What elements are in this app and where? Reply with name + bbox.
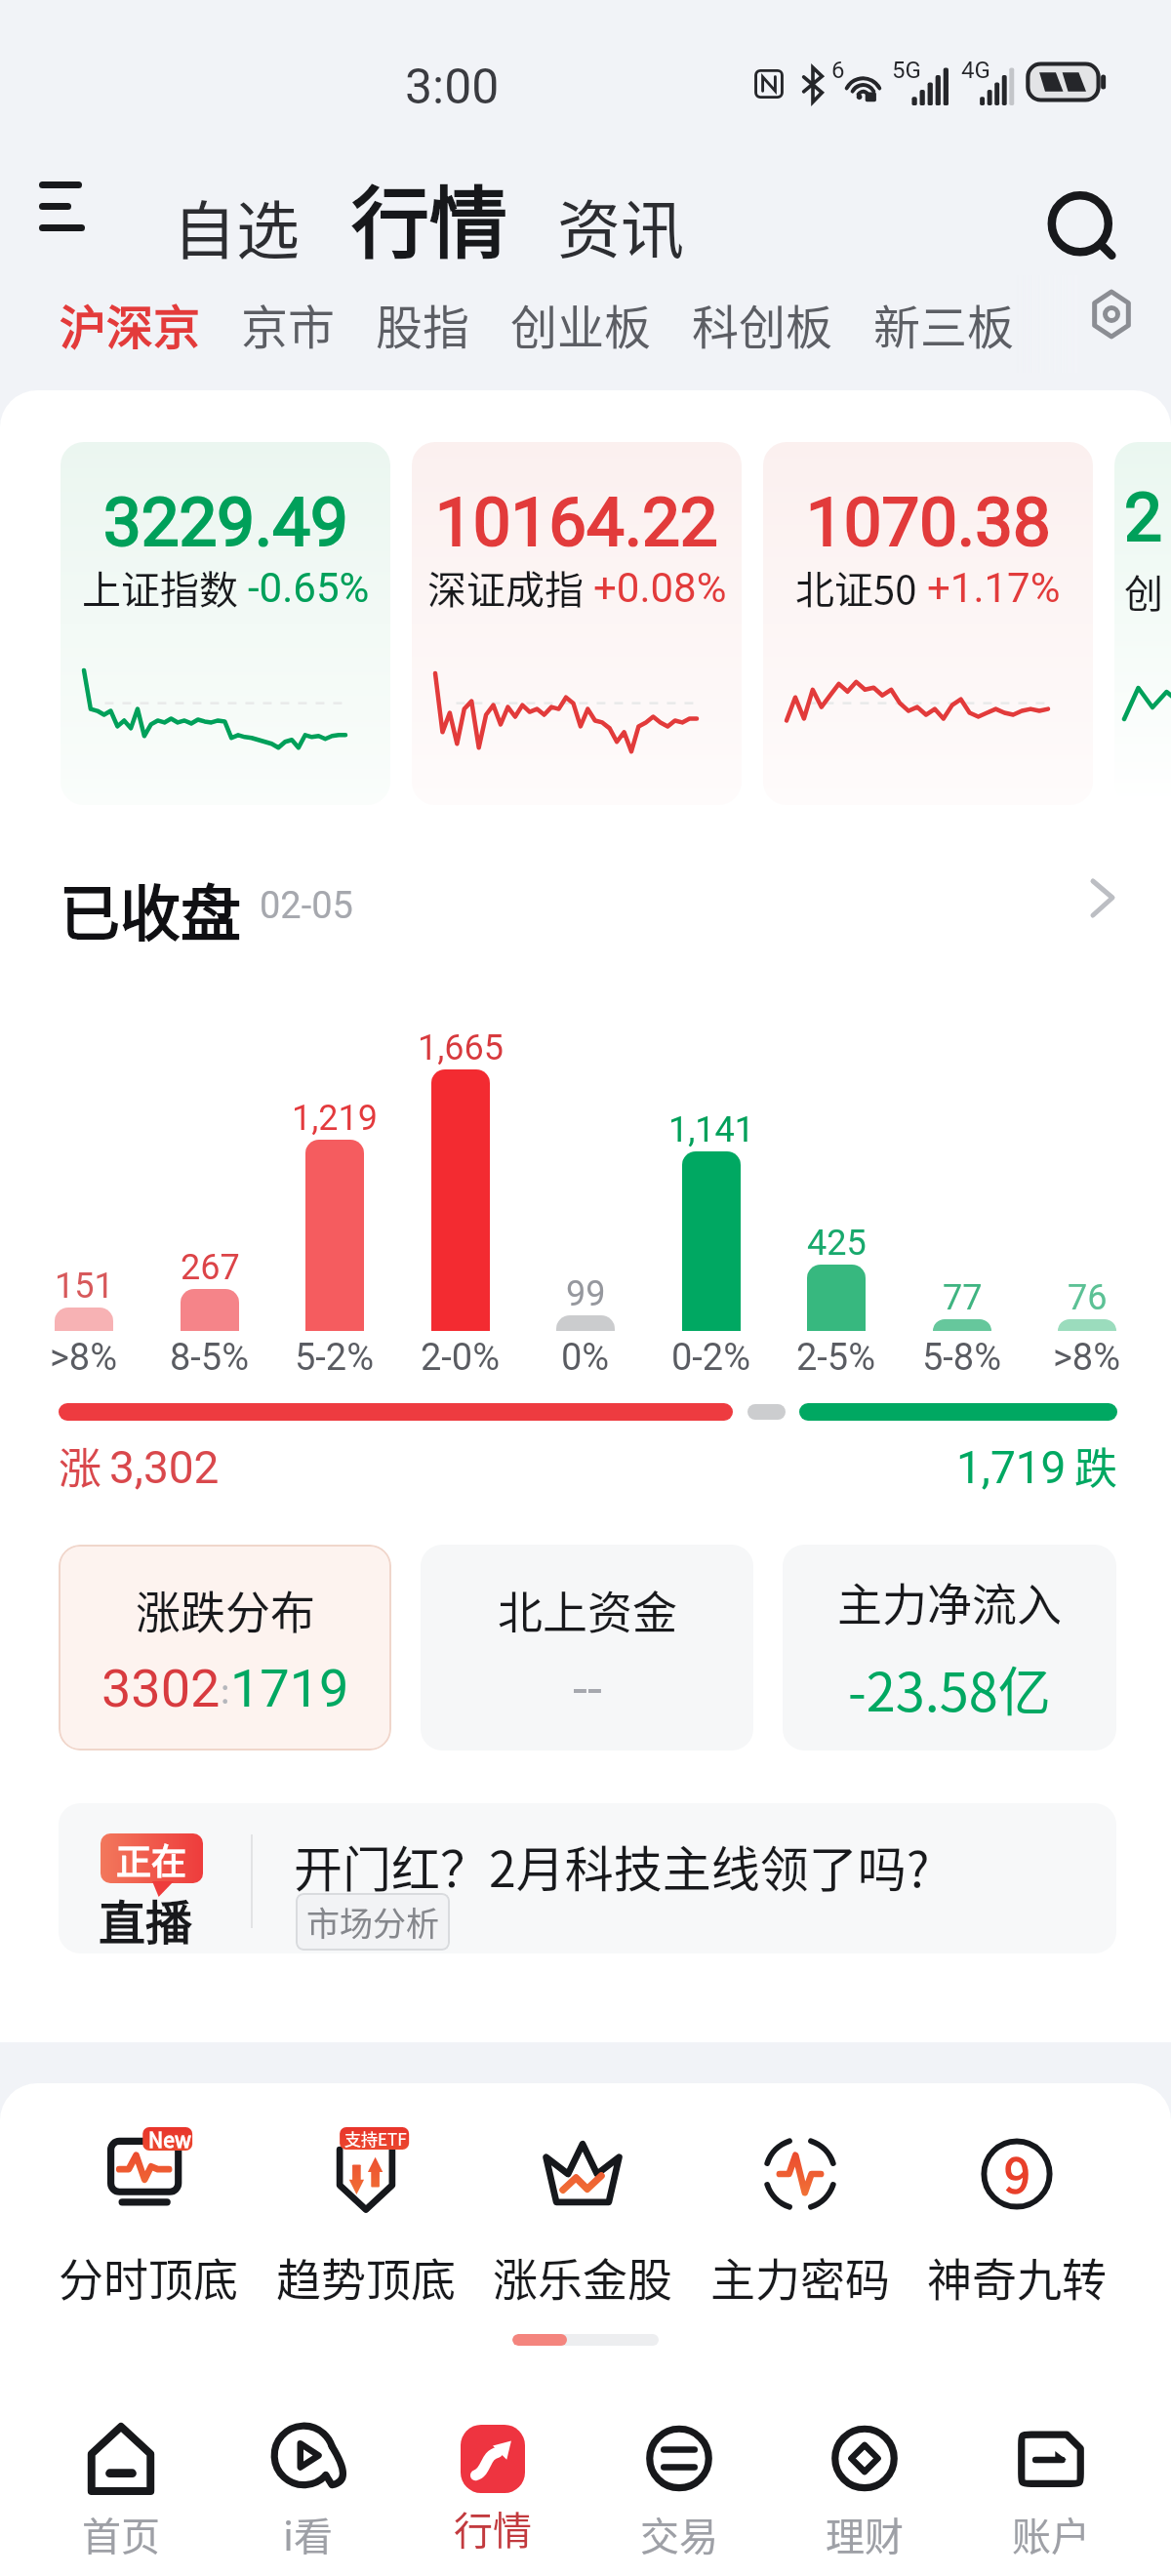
button[interactable]: 3229.49 — [61, 442, 390, 805]
staticText: 1070.38 — [806, 483, 1051, 562]
button[interactable]: 支持ETF — [259, 2127, 473, 2310]
staticText: 北证50 — [795, 559, 917, 616]
button[interactable]: 沪深京 — [58, 280, 203, 368]
button[interactable]: 新三板 — [871, 280, 1017, 368]
staticText: 151 — [55, 1266, 114, 1307]
staticText: 主力密码 — [710, 2244, 890, 2310]
staticText: -0.65% — [248, 564, 370, 612]
staticText: 1,719 — [956, 1441, 1067, 1494]
button[interactable]: 涨乐金股 — [475, 2127, 690, 2310]
staticText: 5-8% — [922, 1336, 1002, 1380]
staticText: 425 — [807, 1223, 867, 1264]
staticText: 4G — [961, 57, 990, 84]
staticText: 76 — [1068, 1277, 1108, 1318]
button[interactable]: Menu — [20, 166, 101, 248]
staticText: 77 — [943, 1277, 983, 1318]
staticText: 6 — [831, 57, 845, 84]
staticText: 理财 — [826, 2506, 904, 2562]
staticText: 市场分析 — [306, 1898, 439, 1946]
staticText: 行情 — [454, 2500, 532, 2556]
staticText: 0% — [561, 1336, 610, 1380]
button[interactable]: 理财 — [772, 2395, 957, 2576]
staticText: 已收盘 — [60, 865, 242, 953]
staticText: 5-2% — [295, 1336, 375, 1380]
staticText: 涨 — [59, 1434, 101, 1497]
staticText: 涨跌分布 — [136, 1577, 315, 1642]
staticText: >8% — [1053, 1336, 1121, 1380]
staticText: 3302 — [101, 1658, 221, 1719]
button[interactable]: 2 — [1114, 442, 1171, 805]
staticText: 2-5% — [796, 1336, 876, 1380]
button[interactable]: 行情 — [400, 2395, 585, 2576]
staticText: : — [221, 1666, 230, 1713]
button[interactable]: 科创板 — [690, 280, 835, 368]
button[interactable]: 主力净流入 — [783, 1545, 1116, 1751]
button[interactable]: New — [41, 2127, 256, 2310]
staticText: 2-0% — [421, 1336, 501, 1380]
button[interactable]: 账户 — [958, 2395, 1144, 2576]
button[interactable]: i看 — [215, 2395, 400, 2576]
button[interactable]: Search — [1038, 183, 1128, 273]
staticText: 99 — [566, 1273, 606, 1314]
staticText: 主力净流入 — [837, 1569, 1062, 1634]
staticText: 267 — [181, 1247, 240, 1288]
staticText: 3,302 — [109, 1441, 220, 1494]
button[interactable]: 京市 — [239, 280, 338, 368]
staticText: 3:00 — [405, 59, 500, 116]
staticText: 5G — [892, 57, 921, 84]
staticText: 新三板 — [873, 290, 1015, 358]
staticText: 02-05 — [260, 884, 353, 928]
staticText: 首页 — [82, 2506, 160, 2562]
staticText: 交易 — [640, 2506, 718, 2562]
staticText: 行情 — [351, 160, 507, 273]
staticText: 自选 — [173, 181, 301, 272]
staticText: i看 — [283, 2506, 333, 2562]
staticText: 深证成指 — [427, 559, 584, 616]
staticText: 神奇九转 — [927, 2244, 1107, 2310]
button[interactable]: 行情 — [343, 152, 515, 281]
staticText: 北上资金 — [498, 1577, 677, 1642]
staticText: 3229.49 — [103, 483, 348, 562]
button[interactable]: 主力密码 — [693, 2127, 908, 2310]
staticText: +1.17% — [927, 564, 1061, 612]
staticText: 京市 — [241, 290, 336, 358]
staticText: 1,219 — [292, 1098, 379, 1139]
staticText: 1,141 — [668, 1109, 755, 1150]
button[interactable]: 交易 — [586, 2395, 772, 2576]
button[interactable]: 1070.38 — [763, 442, 1093, 805]
staticText: 1,665 — [418, 1027, 505, 1068]
button[interactable]: 北上资金 — [421, 1545, 753, 1751]
button[interactable]: 创业板 — [508, 280, 654, 368]
staticText: 1719 — [230, 1658, 349, 1719]
staticText: 9 — [1004, 2138, 1030, 2206]
staticText: >8% — [50, 1336, 118, 1380]
button[interactable]: 自选 — [165, 173, 308, 280]
staticText: 跌 — [1074, 1434, 1117, 1497]
button[interactable]: 10164.22 — [412, 442, 742, 805]
button[interactable]: 股指 — [374, 280, 472, 368]
staticText: 科创板 — [692, 290, 833, 358]
staticText: -23.58亿 — [848, 1650, 1051, 1726]
button[interactable]: 涨跌分布 — [59, 1545, 391, 1751]
button[interactable]: 资讯 — [549, 172, 693, 279]
staticText: -- — [573, 1658, 602, 1719]
staticText: 支持ETF — [344, 2126, 407, 2151]
staticText: 沪深京 — [60, 290, 201, 358]
button[interactable]: 9 — [909, 2127, 1124, 2310]
staticText: 资讯 — [557, 180, 685, 271]
staticText: 2 — [1124, 478, 1162, 557]
staticText: 创 — [1124, 563, 1163, 620]
button[interactable]: 已收盘 — [0, 859, 1171, 956]
staticText: 10164.22 — [435, 483, 718, 562]
staticText: 直播 — [99, 1885, 193, 1953]
staticText: 账户 — [1012, 2506, 1090, 2562]
button[interactable]: 正在 — [59, 1803, 1116, 1953]
button[interactable]: Customize columns — [1072, 275, 1151, 353]
button[interactable]: 首页 — [28, 2395, 214, 2576]
staticText: 0-2% — [671, 1336, 751, 1380]
staticText: 正在 — [116, 1833, 187, 1883]
staticText: +0.08% — [593, 564, 727, 612]
staticText: New — [148, 2124, 191, 2153]
staticText: 分时顶底 — [59, 2244, 238, 2310]
staticText: 股指 — [376, 290, 470, 358]
